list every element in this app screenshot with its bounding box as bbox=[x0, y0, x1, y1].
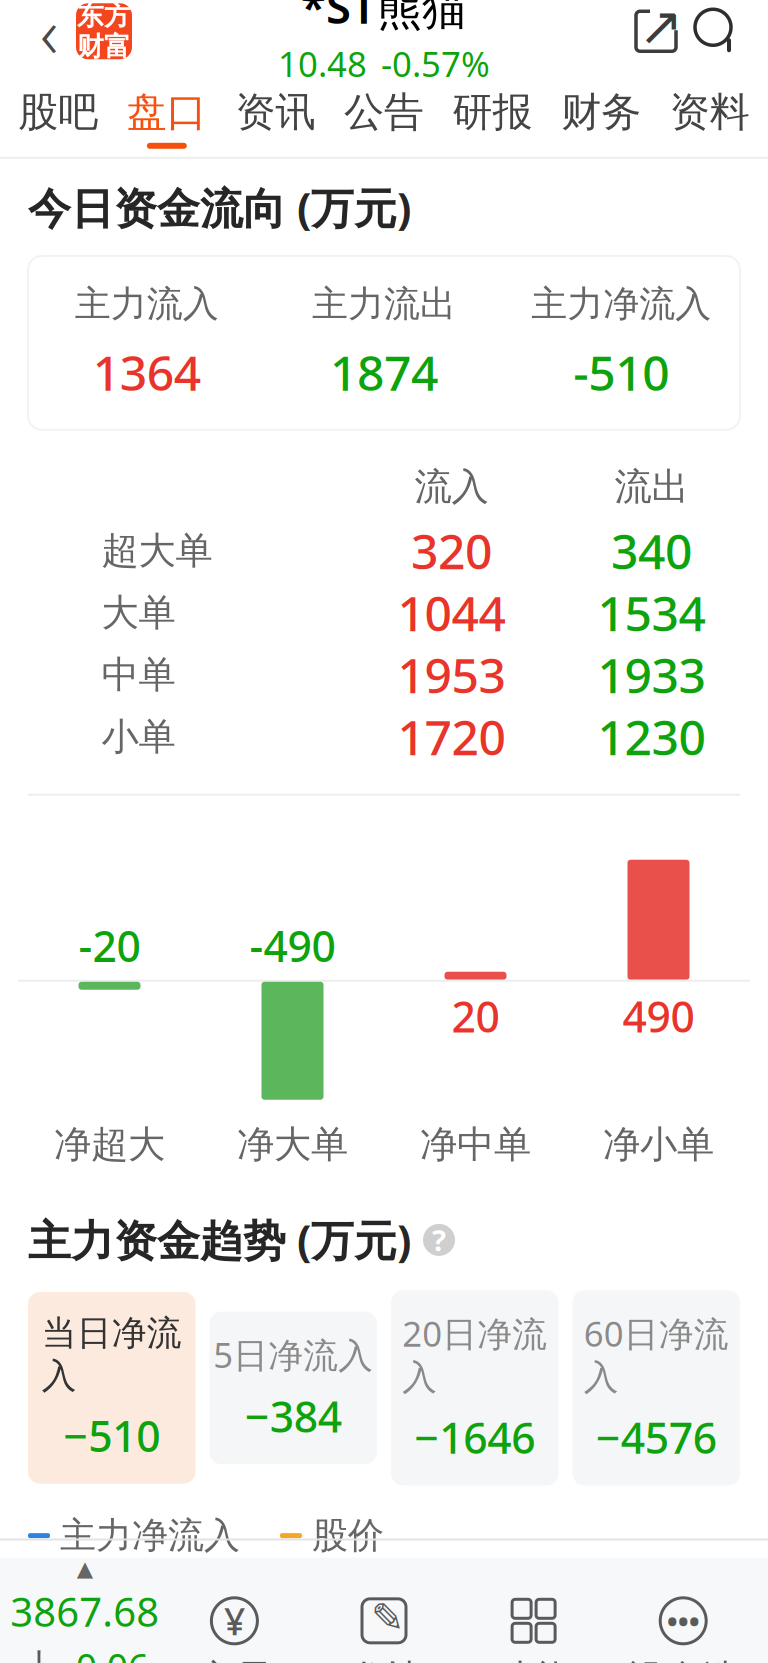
button[interactable]: Back bbox=[22, 0, 76, 66]
staticText: 60日净流入 bbox=[584, 1310, 729, 1399]
staticText: 中单 bbox=[101, 652, 175, 698]
button[interactable]: 研报 bbox=[438, 80, 547, 157]
staticText: −510 bbox=[63, 1407, 160, 1464]
button[interactable]: Help bbox=[423, 1224, 455, 1256]
staticText: −384 bbox=[245, 1388, 342, 1444]
staticText: 小单 bbox=[101, 714, 175, 760]
staticText: 功能 bbox=[497, 1656, 571, 1663]
staticText: 20日净流入 bbox=[402, 1310, 547, 1399]
staticText: 主力净流入 bbox=[60, 1513, 240, 1558]
staticText: 1534 bbox=[597, 581, 705, 645]
staticText: -510 bbox=[573, 340, 669, 404]
staticText: 资料 bbox=[670, 88, 750, 137]
staticText: -20 bbox=[78, 917, 140, 974]
staticText: 资讯 bbox=[235, 88, 315, 137]
staticText: 1364 bbox=[93, 340, 201, 404]
staticText: *ST熊猫 bbox=[301, 0, 467, 36]
button[interactable]: 功能 bbox=[459, 1596, 608, 1663]
button[interactable]: ¥ bbox=[160, 1596, 309, 1663]
staticText: ‹ bbox=[40, 0, 58, 77]
button[interactable]: ▲ bbox=[10, 1556, 160, 1663]
button[interactable]: Share bbox=[626, 1, 686, 61]
staticText: 净中单 bbox=[420, 1122, 531, 1168]
staticText: -490 bbox=[249, 917, 335, 974]
button[interactable]: 5日净流入 bbox=[209, 1311, 377, 1464]
staticText: -0.57% bbox=[381, 40, 490, 86]
staticText: 财富 bbox=[77, 30, 131, 63]
staticText: 1720 bbox=[397, 705, 505, 769]
button[interactable]: 盘口 bbox=[113, 80, 221, 157]
button[interactable]: 资料 bbox=[655, 80, 764, 157]
button[interactable]: 60日净流入 bbox=[572, 1290, 740, 1485]
staticText: 3867.68 bbox=[10, 1585, 159, 1638]
staticText: 320 bbox=[411, 519, 492, 583]
staticText: 上证 bbox=[21, 1646, 58, 1663]
staticText: 股价 bbox=[312, 1513, 384, 1558]
button[interactable]: 公告 bbox=[330, 80, 438, 157]
staticText: 5日净流入 bbox=[213, 1331, 373, 1377]
staticText: 净超大 bbox=[54, 1122, 165, 1168]
button[interactable]: ✎ bbox=[309, 1596, 459, 1663]
staticText: −4576 bbox=[596, 1409, 717, 1466]
button[interactable]: 股吧 bbox=[4, 80, 113, 157]
staticText: −1646 bbox=[414, 1409, 535, 1466]
staticText: 交易 bbox=[197, 1656, 271, 1663]
staticText: 流入 bbox=[414, 464, 488, 510]
staticText: ↗ bbox=[638, 0, 683, 56]
staticText: 大单 bbox=[101, 590, 175, 636]
staticText: 1953 bbox=[397, 643, 505, 707]
staticText: ¥ bbox=[224, 1596, 245, 1646]
staticText: 财务 bbox=[561, 88, 641, 137]
button[interactable]: 东方财富 bbox=[76, 3, 132, 59]
staticText: ••• bbox=[667, 1601, 700, 1640]
staticText: ? bbox=[432, 1220, 446, 1259]
button[interactable]: 资讯 bbox=[221, 80, 330, 157]
staticText: 1230 bbox=[597, 705, 705, 769]
staticText: 设自选 bbox=[628, 1656, 739, 1663]
staticText: 股吧 bbox=[18, 88, 98, 137]
staticText: 盘口 bbox=[127, 88, 207, 137]
staticText: 主力流入 bbox=[75, 282, 219, 326]
staticText: 今日资金流向 (万元) bbox=[28, 179, 411, 236]
button[interactable]: ••• bbox=[608, 1596, 758, 1663]
staticText: 10.48 bbox=[278, 40, 367, 86]
staticText: 主力流出 bbox=[312, 282, 456, 326]
button[interactable]: 财务 bbox=[547, 80, 655, 157]
staticText: 主力资金趋势 (万元) bbox=[28, 1212, 411, 1268]
staticText: 超大单 bbox=[101, 528, 212, 574]
staticText: 340 bbox=[611, 519, 692, 583]
staticText: 发帖 bbox=[347, 1656, 421, 1663]
staticText: 当日净流入 bbox=[42, 1312, 182, 1397]
staticText: 研报 bbox=[453, 88, 533, 137]
button[interactable]: Search bbox=[686, 1, 746, 61]
staticText: 流出 bbox=[614, 464, 688, 510]
staticText: 公告 bbox=[344, 88, 424, 137]
staticText: 主力净流入 bbox=[531, 282, 711, 326]
staticText: 净大单 bbox=[237, 1122, 348, 1168]
staticText: 净小单 bbox=[603, 1122, 714, 1168]
staticText: 1044 bbox=[397, 581, 505, 645]
button[interactable]: 当日净流入 bbox=[28, 1292, 195, 1484]
staticText: ▲ bbox=[77, 1556, 93, 1581]
staticText: 490 bbox=[622, 988, 694, 1044]
staticText: ✎ bbox=[371, 1595, 405, 1640]
button[interactable]: 20日净流入 bbox=[391, 1290, 558, 1485]
staticText: 1933 bbox=[597, 643, 705, 707]
staticText: 1874 bbox=[330, 340, 438, 404]
staticText: 东方 bbox=[77, 0, 131, 32]
staticText: 20 bbox=[451, 988, 499, 1044]
staticText: -0.06% bbox=[64, 1642, 149, 1663]
